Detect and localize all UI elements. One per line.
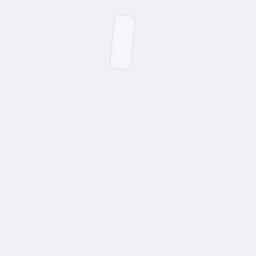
- button[interactable]: Device: [112, 15, 133, 69]
